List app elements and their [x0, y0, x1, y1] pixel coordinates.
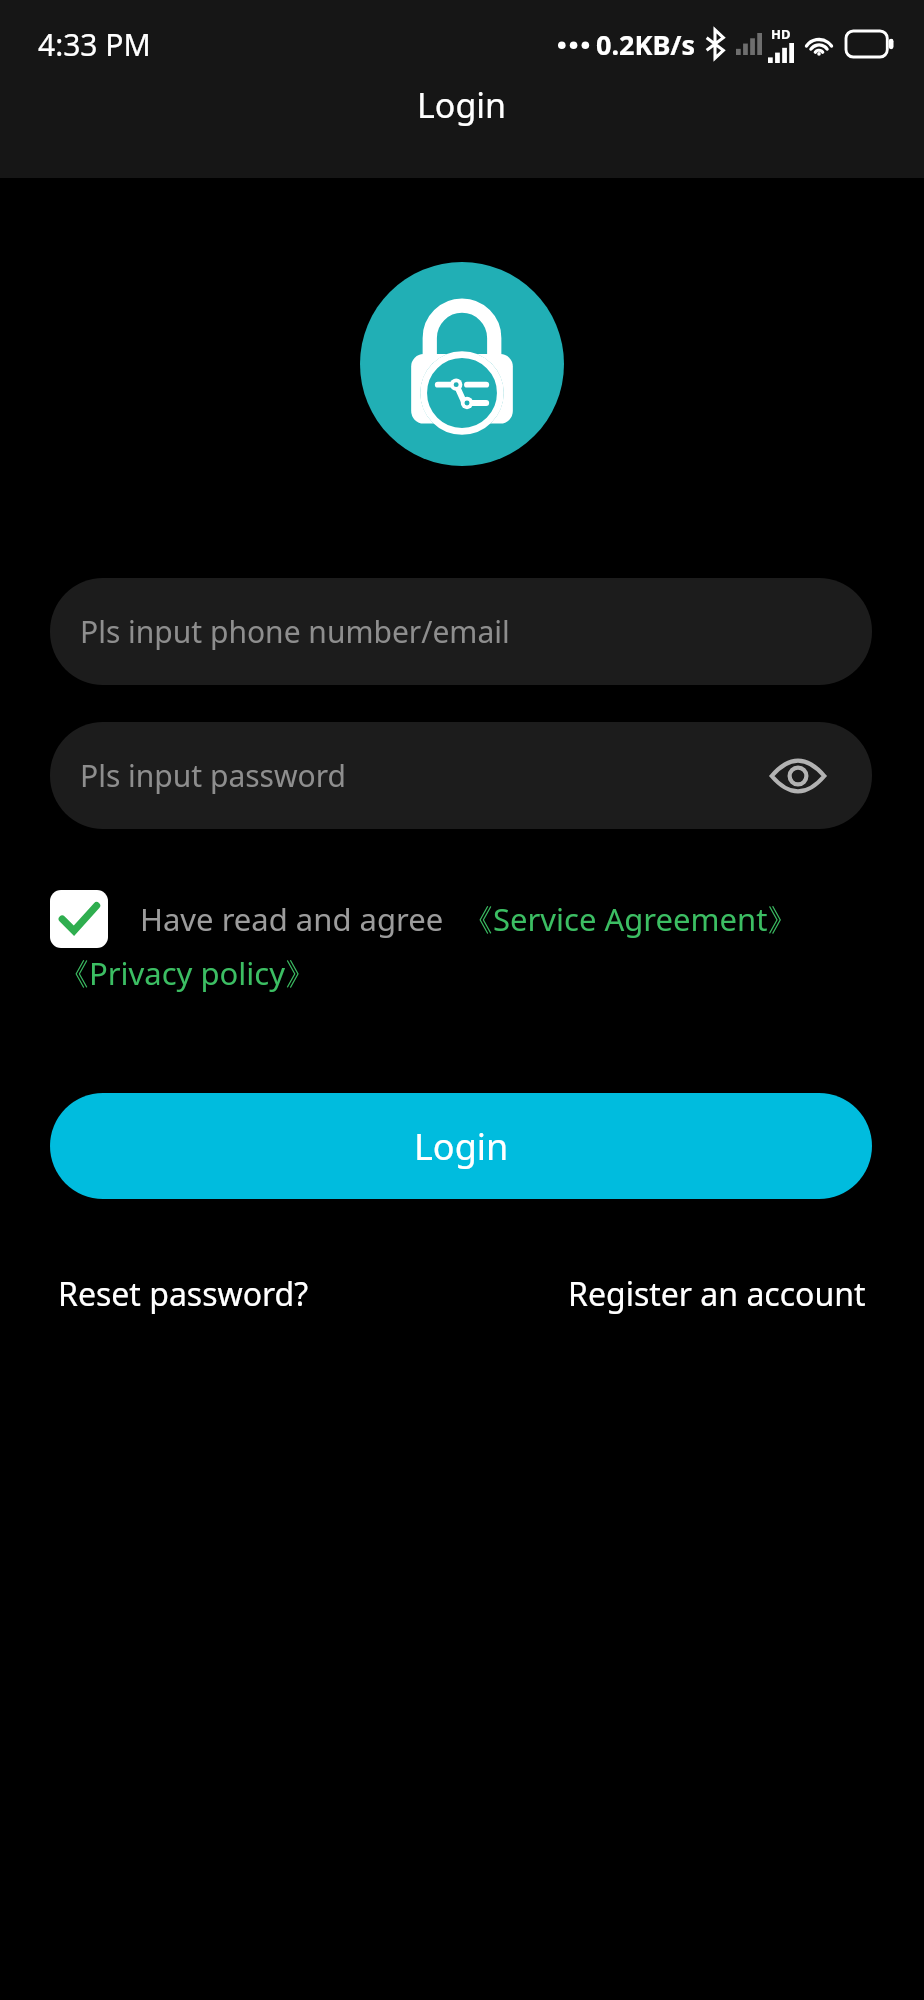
- staticText: Reset password?: [58, 1272, 309, 1316]
- staticText: 《Privacy policy》: [58, 952, 316, 994]
- button[interactable]: Login: [50, 1093, 872, 1199]
- staticText: Login: [417, 82, 507, 128]
- button[interactable]: Register an account: [568, 1272, 866, 1316]
- staticText: 4:33 PM: [38, 24, 151, 65]
- button[interactable]: 《Privacy policy》: [58, 952, 316, 994]
- staticText: Register an account: [568, 1272, 866, 1316]
- staticText: HD: [771, 25, 791, 43]
- staticText: 《Service Agreement》: [462, 898, 799, 940]
- staticText: Pls input phone number/email: [80, 611, 510, 652]
- staticText: Have read and agree: [140, 898, 444, 940]
- button[interactable]: Reset password?: [58, 1272, 309, 1316]
- staticText: Login: [414, 1122, 509, 1171]
- staticText: Pls input password: [80, 755, 346, 796]
- button[interactable]: Pls input phone number/email: [50, 578, 872, 685]
- button[interactable]: 《Service Agreement》: [462, 898, 799, 940]
- button[interactable]: Show password: [762, 740, 834, 812]
- button[interactable]: Pls input password: [50, 722, 872, 829]
- button[interactable]: Agree to terms checkbox: [50, 890, 108, 948]
- staticText: 0.2KB/s: [596, 26, 696, 63]
